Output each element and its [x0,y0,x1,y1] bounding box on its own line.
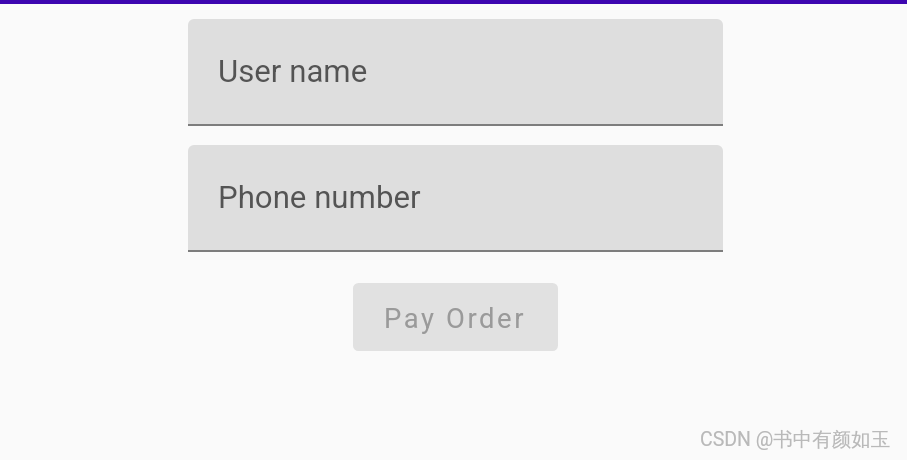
button[interactable]: Phone number [188,145,723,252]
staticText: CSDN @书中有颜如玉 [700,427,891,452]
button[interactable]: User name [188,19,723,126]
staticText: User name [218,53,368,90]
staticText: Phone number [218,179,421,216]
staticText: Pay Order [384,303,527,335]
button[interactable]: Pay Order [353,283,558,351]
